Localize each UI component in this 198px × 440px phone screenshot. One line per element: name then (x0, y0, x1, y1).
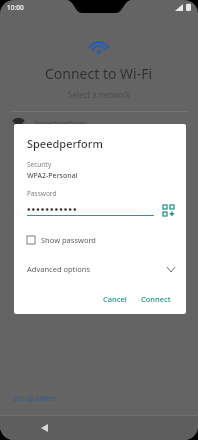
staticText: WPA2-Personal (27, 171, 78, 181)
staticText: Password (27, 189, 57, 198)
staticText: Show password (41, 235, 96, 245)
staticText: Connect (141, 294, 171, 304)
button[interactable]: Speedperform (0, 112, 198, 134)
staticText: Advanced options (27, 264, 91, 274)
staticText: Set up offline (13, 394, 57, 404)
button[interactable]: Advanced options (27, 262, 175, 276)
staticText: Security (27, 160, 52, 169)
button[interactable]: Show password (27, 233, 96, 247)
staticText: Cancel (103, 294, 127, 304)
staticText: Speedperform (27, 136, 103, 151)
button[interactable]: Back (33, 417, 55, 439)
staticText: Connect to Wi-Fi (45, 64, 153, 83)
button[interactable] (27, 204, 154, 216)
staticText: Select a network (68, 89, 130, 100)
staticText: 10:00 (7, 3, 24, 12)
button[interactable]: Scan QR code (161, 203, 175, 217)
button[interactable]: Cancel (99, 291, 131, 307)
button[interactable]: Set up offline (0, 394, 198, 410)
staticText: Speedperform (35, 118, 86, 128)
button[interactable]: Connect (137, 291, 175, 307)
